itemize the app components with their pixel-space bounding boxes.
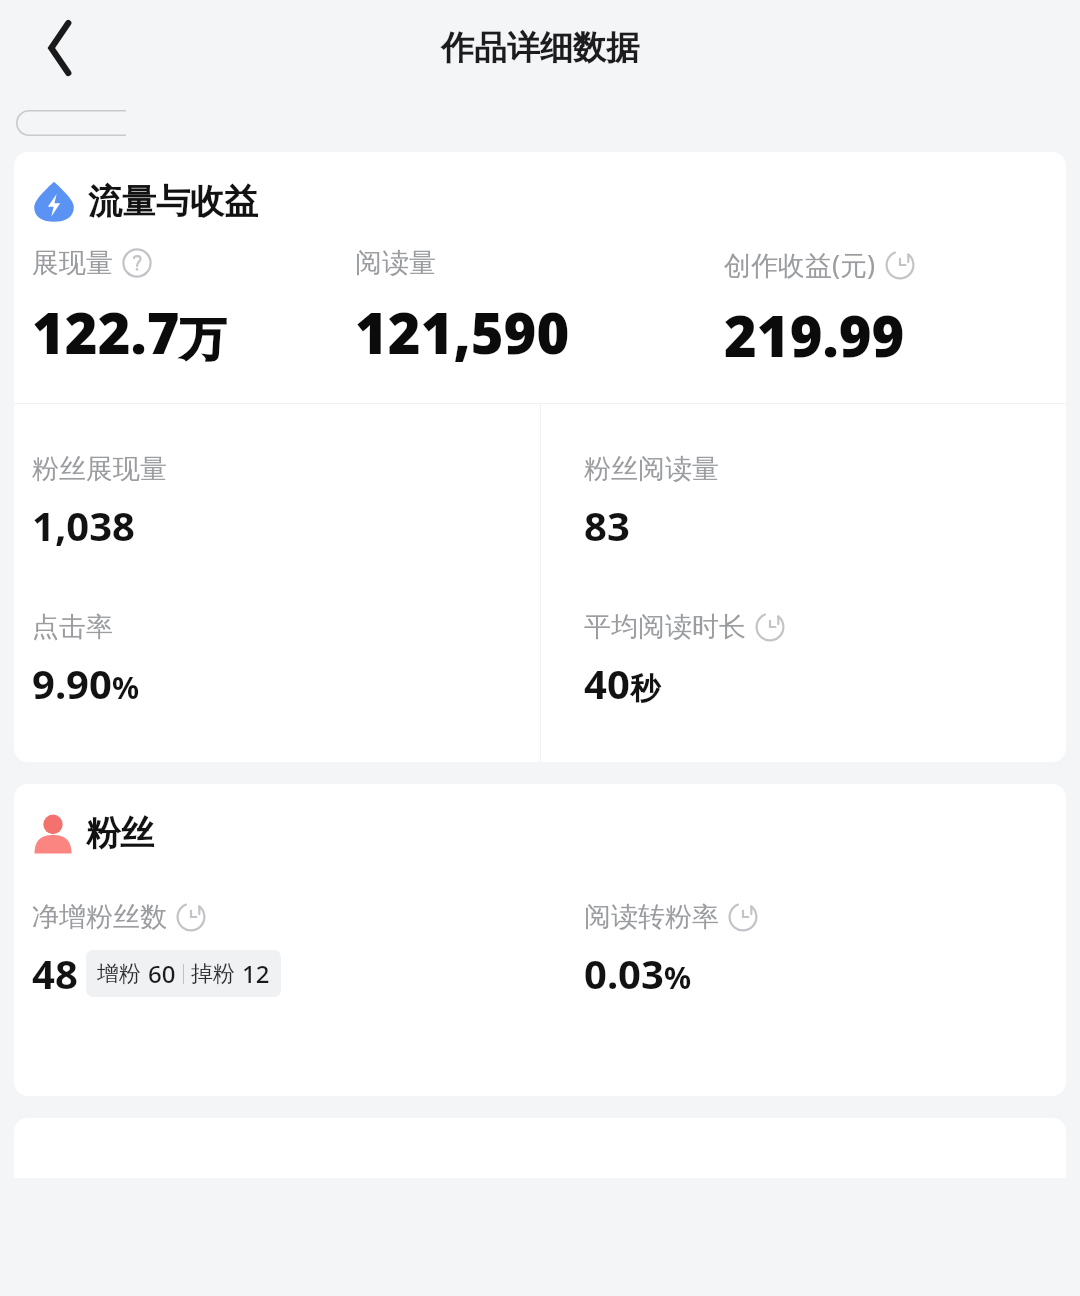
button[interactable]: 流量与收益 — [14, 152, 1066, 762]
staticText: % — [664, 957, 692, 998]
staticText: 60 — [148, 957, 176, 990]
staticText: 流量与收益 — [88, 180, 258, 223]
staticText: 48 — [32, 946, 78, 1000]
staticText: 秒 — [630, 670, 660, 708]
button[interactable]: 粉丝 — [14, 784, 1066, 1096]
staticText: 219.99 — [724, 297, 905, 373]
button[interactable]: 数据更新说明 — [176, 902, 206, 932]
staticText: 点击率 — [32, 610, 113, 644]
button[interactable]: Back — [22, 3, 112, 93]
staticText: 平均阅读时长 — [584, 610, 746, 644]
button[interactable]: 说明 — [122, 248, 152, 278]
staticText: 粉丝 — [86, 812, 154, 855]
staticText: 粉丝阅读量 — [584, 452, 719, 486]
staticText: 净增粉丝数 — [32, 900, 167, 934]
button[interactable]: 数据更新说明 — [728, 902, 758, 932]
staticText: % — [112, 667, 140, 708]
staticText: 40 — [584, 656, 630, 710]
staticText: 阅读转粉率 — [584, 900, 719, 934]
staticText: 0.03 — [584, 946, 664, 1000]
staticText: 83 — [584, 498, 630, 552]
staticText: 掉粉 — [191, 960, 235, 988]
staticText: 122.7 — [32, 294, 180, 370]
staticText: 展现量 — [32, 246, 113, 280]
staticText: 阅读量 — [355, 246, 436, 280]
staticText: 作品详细数据 — [441, 27, 639, 69]
staticText: 121,590 — [355, 294, 570, 370]
staticText: 万 — [180, 311, 226, 369]
staticText: 粉丝展现量 — [32, 452, 167, 486]
button[interactable]: 数据更新说明 — [755, 612, 785, 642]
button[interactable]: 数据更新说明 — [885, 250, 915, 280]
staticText: 9.90 — [32, 656, 112, 710]
staticText: 12 — [242, 957, 270, 990]
staticText: 1,038 — [32, 498, 135, 552]
staticText: 增粉 — [97, 960, 141, 988]
staticText: 创作收益(元) — [724, 246, 876, 283]
